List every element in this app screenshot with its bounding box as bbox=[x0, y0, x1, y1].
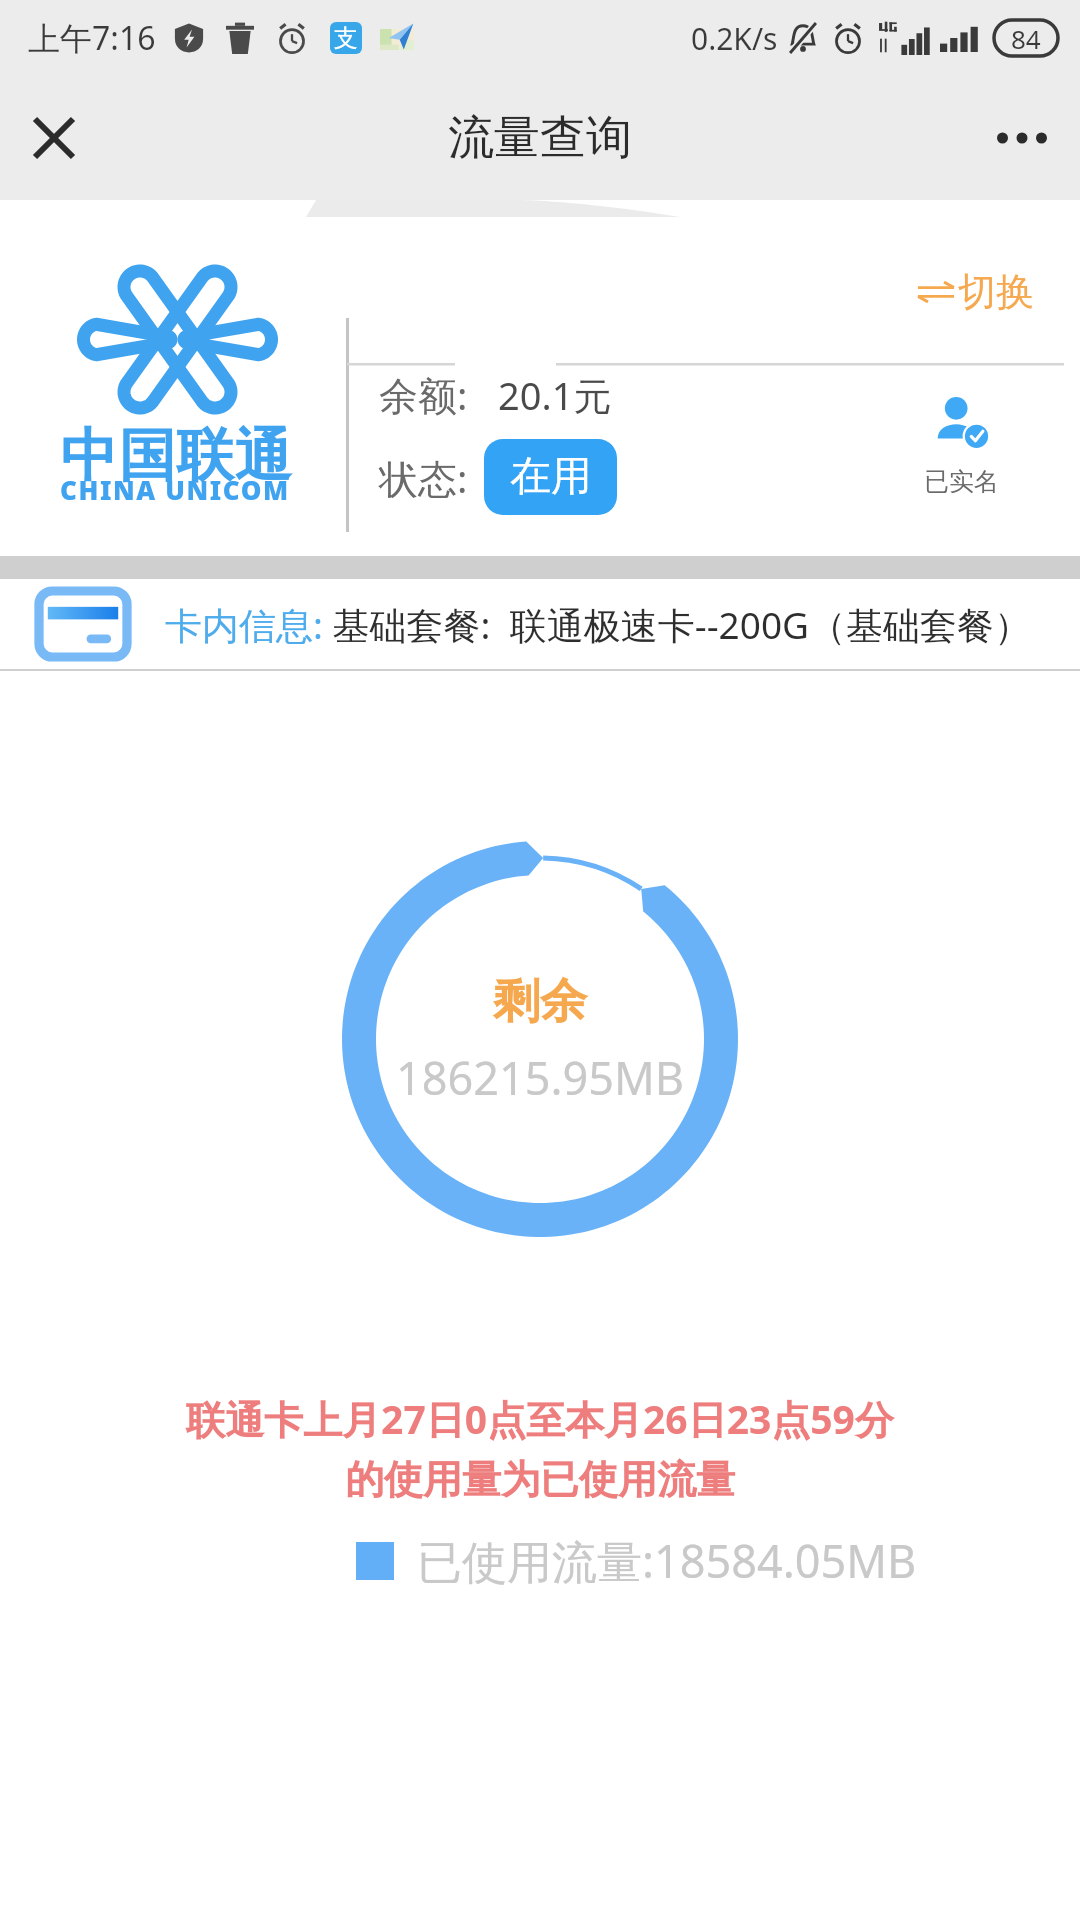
staticText: 基础套餐: 联通极速卡--200G（基础套餐） bbox=[323, 599, 1032, 650]
staticText: 中国联通 bbox=[60, 420, 292, 492]
staticText: 的使用量为已使用流量 bbox=[345, 1455, 735, 1504]
staticText: 流量查询 bbox=[448, 109, 632, 167]
staticText: 上午7:16 bbox=[28, 16, 156, 60]
staticText: 84 bbox=[1011, 21, 1041, 56]
button[interactable]: 已实名 bbox=[920, 394, 1003, 499]
staticText: 联通卡上月27日0点至本月26日23点59分 bbox=[186, 1392, 894, 1445]
staticText: 状态: bbox=[379, 451, 468, 504]
staticText: 186215.95MB bbox=[396, 1047, 685, 1108]
staticText: 切换 bbox=[958, 268, 1034, 316]
button[interactable]: More options bbox=[982, 108, 1062, 168]
staticText: 卡内信息: bbox=[165, 599, 323, 650]
staticText: 剩余 bbox=[493, 972, 587, 1031]
button[interactable]: 卡内信息: bbox=[0, 579, 1080, 669]
staticText: 20.1元 bbox=[498, 369, 612, 421]
staticText: 0.2K/s bbox=[691, 18, 778, 59]
staticText: 已使用流量:18584.05MB bbox=[417, 1530, 917, 1591]
button[interactable]: Close bbox=[18, 102, 90, 174]
staticText: 已实名 bbox=[924, 466, 999, 497]
other: China Unicom logo bbox=[78, 264, 277, 415]
button[interactable]: 切换 bbox=[910, 260, 1040, 324]
staticText: 余额: bbox=[379, 368, 468, 421]
button[interactable]: 在用 bbox=[484, 439, 617, 515]
staticText: CHINA UNICOM bbox=[60, 472, 290, 507]
staticText: 在用 bbox=[510, 451, 592, 503]
staticText: 支 bbox=[334, 23, 358, 53]
